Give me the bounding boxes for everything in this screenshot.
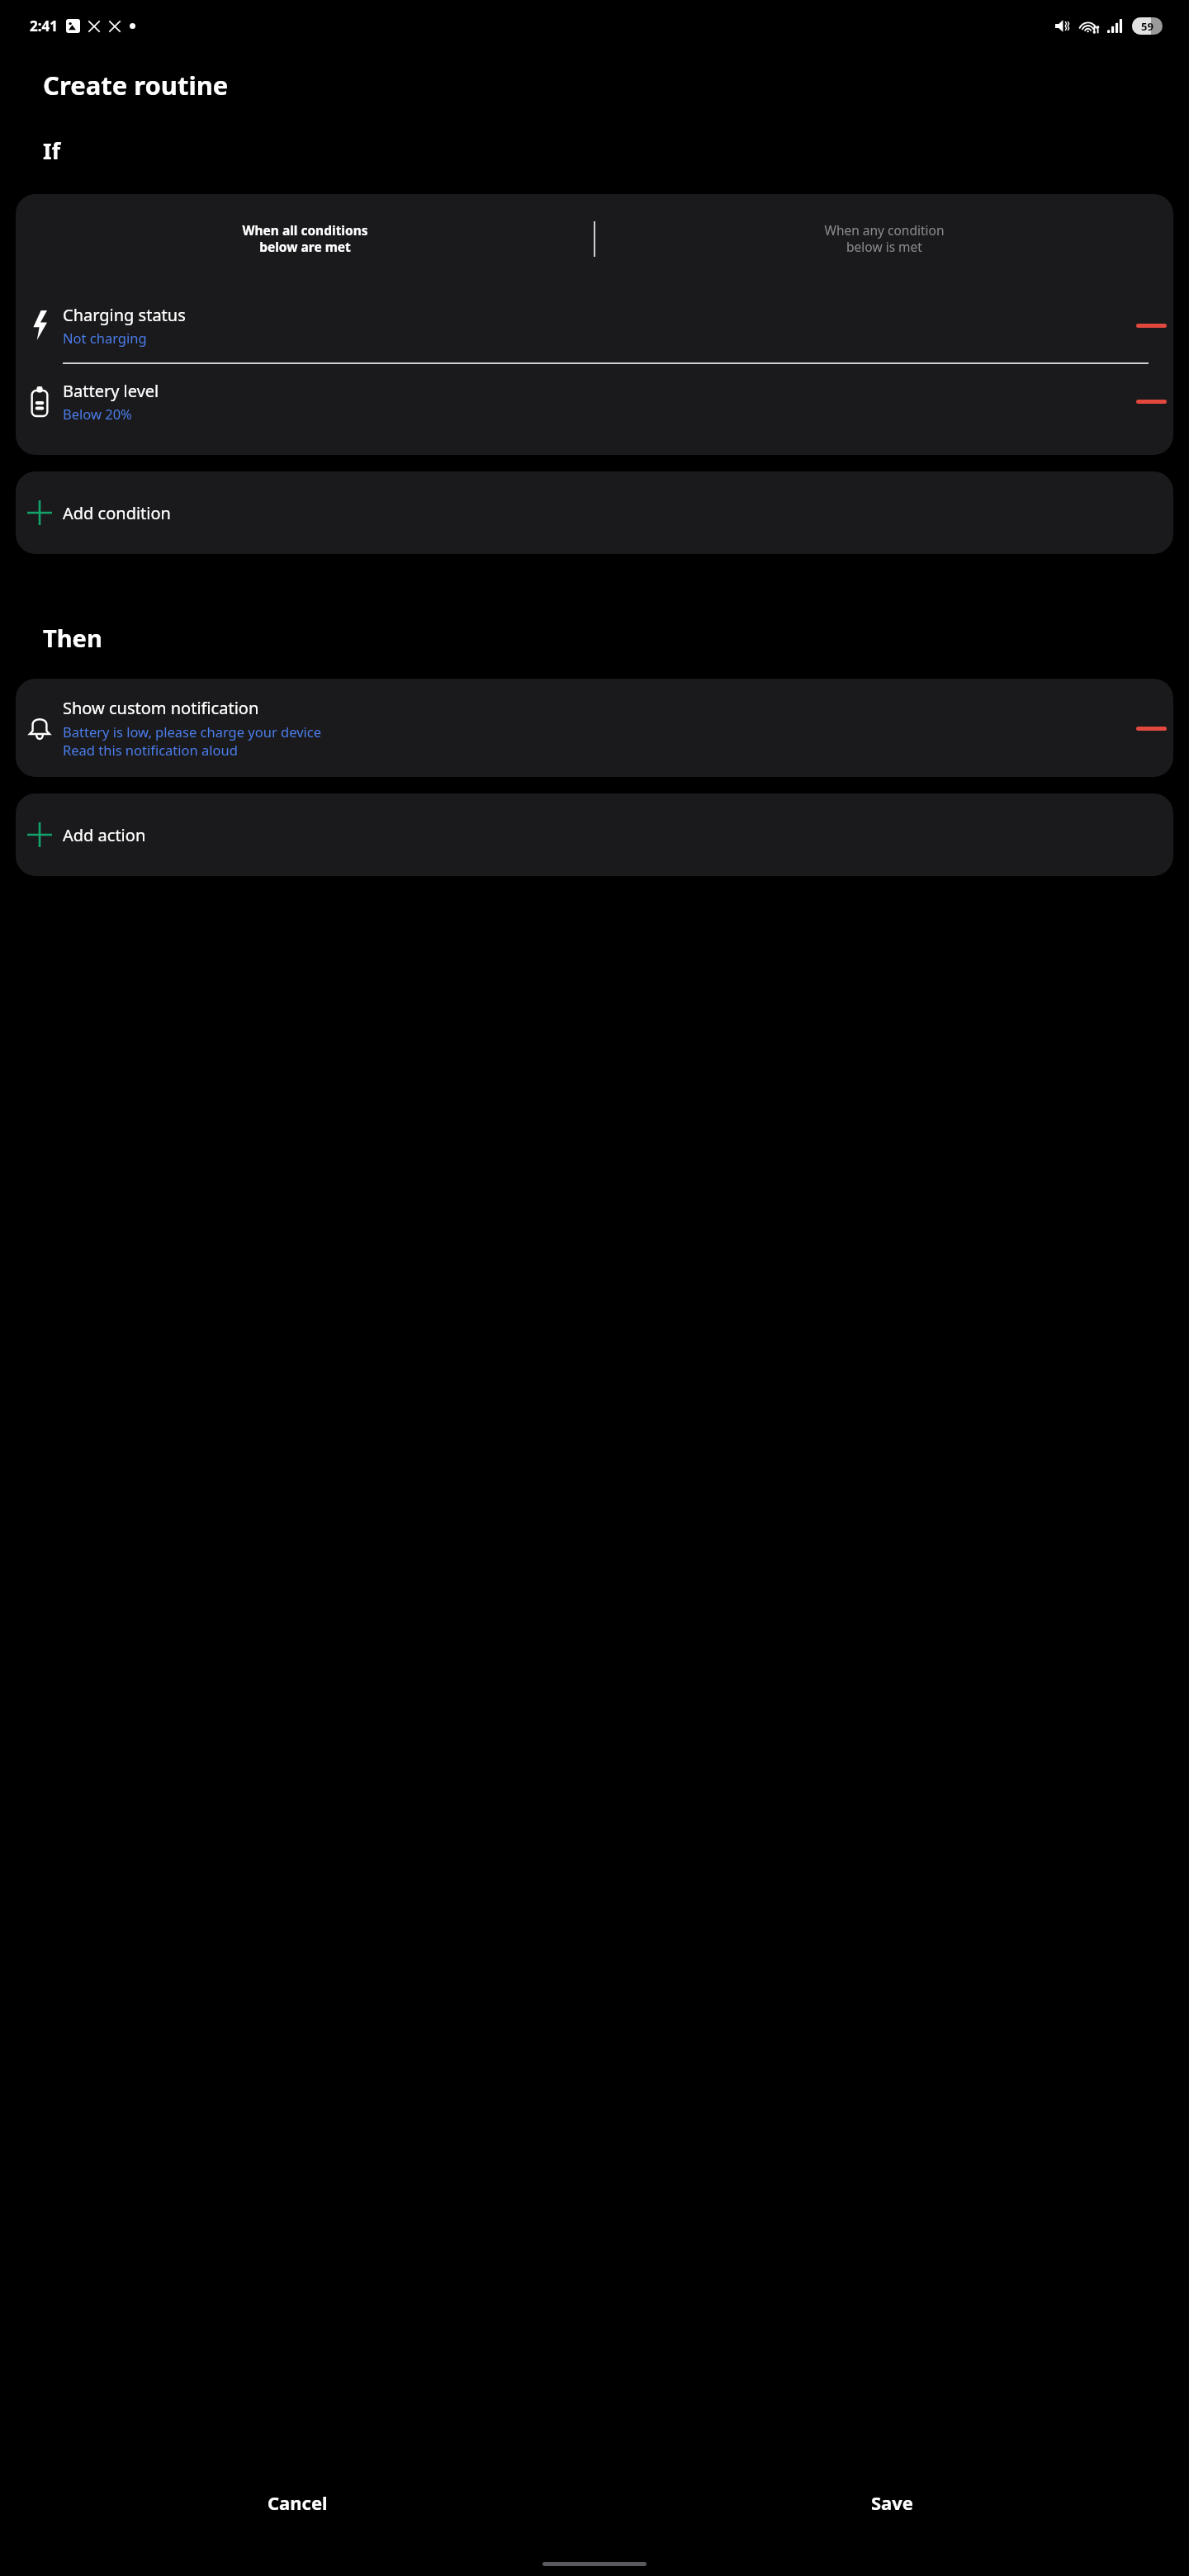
button[interactable]: Remove <box>1129 303 1173 348</box>
button[interactable]: Remove <box>1129 379 1173 424</box>
button[interactable]: Charging status <box>16 288 1173 362</box>
staticText: Battery level <box>63 380 159 402</box>
staticText: Not charging <box>63 329 147 347</box>
staticText: Add condition <box>63 502 171 524</box>
button[interactable]: Cancel <box>0 2479 594 2526</box>
button[interactable]: Add action <box>16 793 1173 876</box>
button[interactable]: Add condition <box>16 471 1173 554</box>
staticText: 2:41 <box>30 17 58 36</box>
staticText: 59 <box>1141 19 1153 34</box>
button[interactable]: Remove <box>1129 706 1173 751</box>
staticText: Cancel <box>268 2490 328 2515</box>
staticText: Add action <box>63 824 146 846</box>
staticText: Then <box>43 622 102 654</box>
staticText: If <box>43 135 60 166</box>
staticText: Below 20% <box>63 405 132 423</box>
staticText: Show custom notification <box>63 697 259 719</box>
staticText: Charging status <box>63 304 186 326</box>
staticText: Save <box>871 2490 913 2515</box>
button[interactable]: When all conditions below are met <box>16 221 594 256</box>
staticText: When all conditions below are met <box>242 221 368 256</box>
button[interactable]: When any condition below is met <box>595 221 1173 256</box>
staticText: Read this notification aloud <box>63 741 238 759</box>
staticText: When any condition below is met <box>824 221 945 256</box>
staticText: Battery is low, please charge your devic… <box>63 722 322 741</box>
button[interactable]: Battery level <box>16 364 1173 438</box>
button[interactable]: Show custom notification <box>16 679 1173 777</box>
staticText: Create routine <box>43 68 229 102</box>
button[interactable]: Save <box>594 2479 1189 2526</box>
